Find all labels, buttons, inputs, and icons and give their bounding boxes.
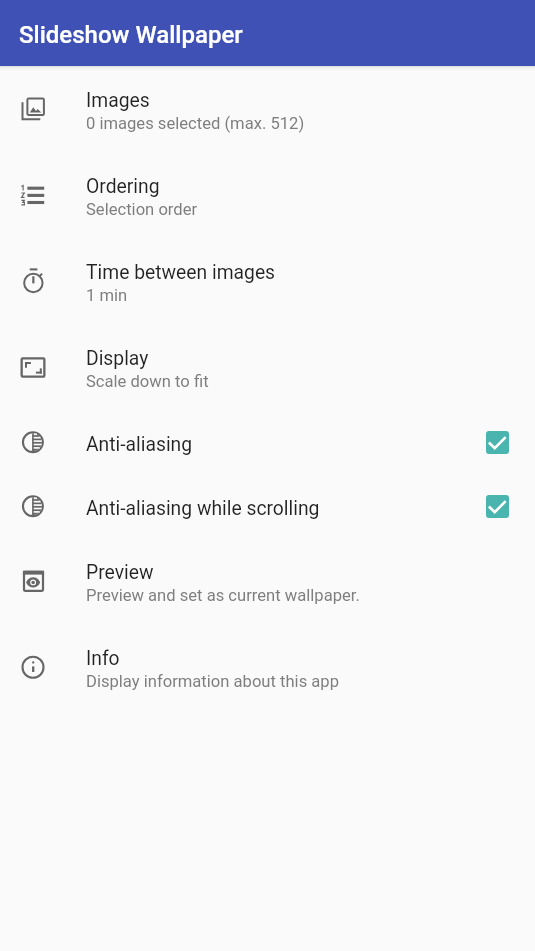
staticText: Info: [86, 647, 120, 670]
staticText: Preview and set as current wallpaper.: [86, 586, 360, 605]
button[interactable]: Anti-aliasing: [0, 410, 535, 474]
button[interactable]: Time between images: [0, 238, 535, 324]
button[interactable]: Images: [0, 66, 535, 152]
button[interactable]: Preview: [0, 538, 535, 624]
staticText: Slideshow Wallpaper: [19, 21, 243, 49]
staticText: Anti-aliasing: [86, 433, 193, 456]
button[interactable]: Toggle Anti-aliasing while scrolling: [459, 474, 535, 538]
staticText: Anti-aliasing while scrolling: [86, 497, 320, 520]
button[interactable]: Anti-aliasing while scrolling: [0, 474, 535, 538]
button[interactable]: Ordering: [0, 152, 535, 238]
button[interactable]: Info: [0, 624, 535, 710]
staticText: Images: [86, 89, 150, 112]
staticText: Ordering: [86, 175, 160, 198]
staticText: Scale down to fit: [86, 372, 209, 391]
staticText: Selection order: [86, 200, 198, 219]
staticText: Display information about this app: [86, 672, 339, 691]
button[interactable]: Toggle Anti-aliasing: [459, 410, 535, 474]
staticText: Display: [86, 347, 149, 370]
staticText: 1 min: [86, 286, 128, 305]
staticText: 0 images selected (max. 512): [86, 114, 305, 133]
staticText: Time between images: [86, 261, 276, 284]
button[interactable]: Display: [0, 324, 535, 410]
staticText: Preview: [86, 561, 154, 584]
